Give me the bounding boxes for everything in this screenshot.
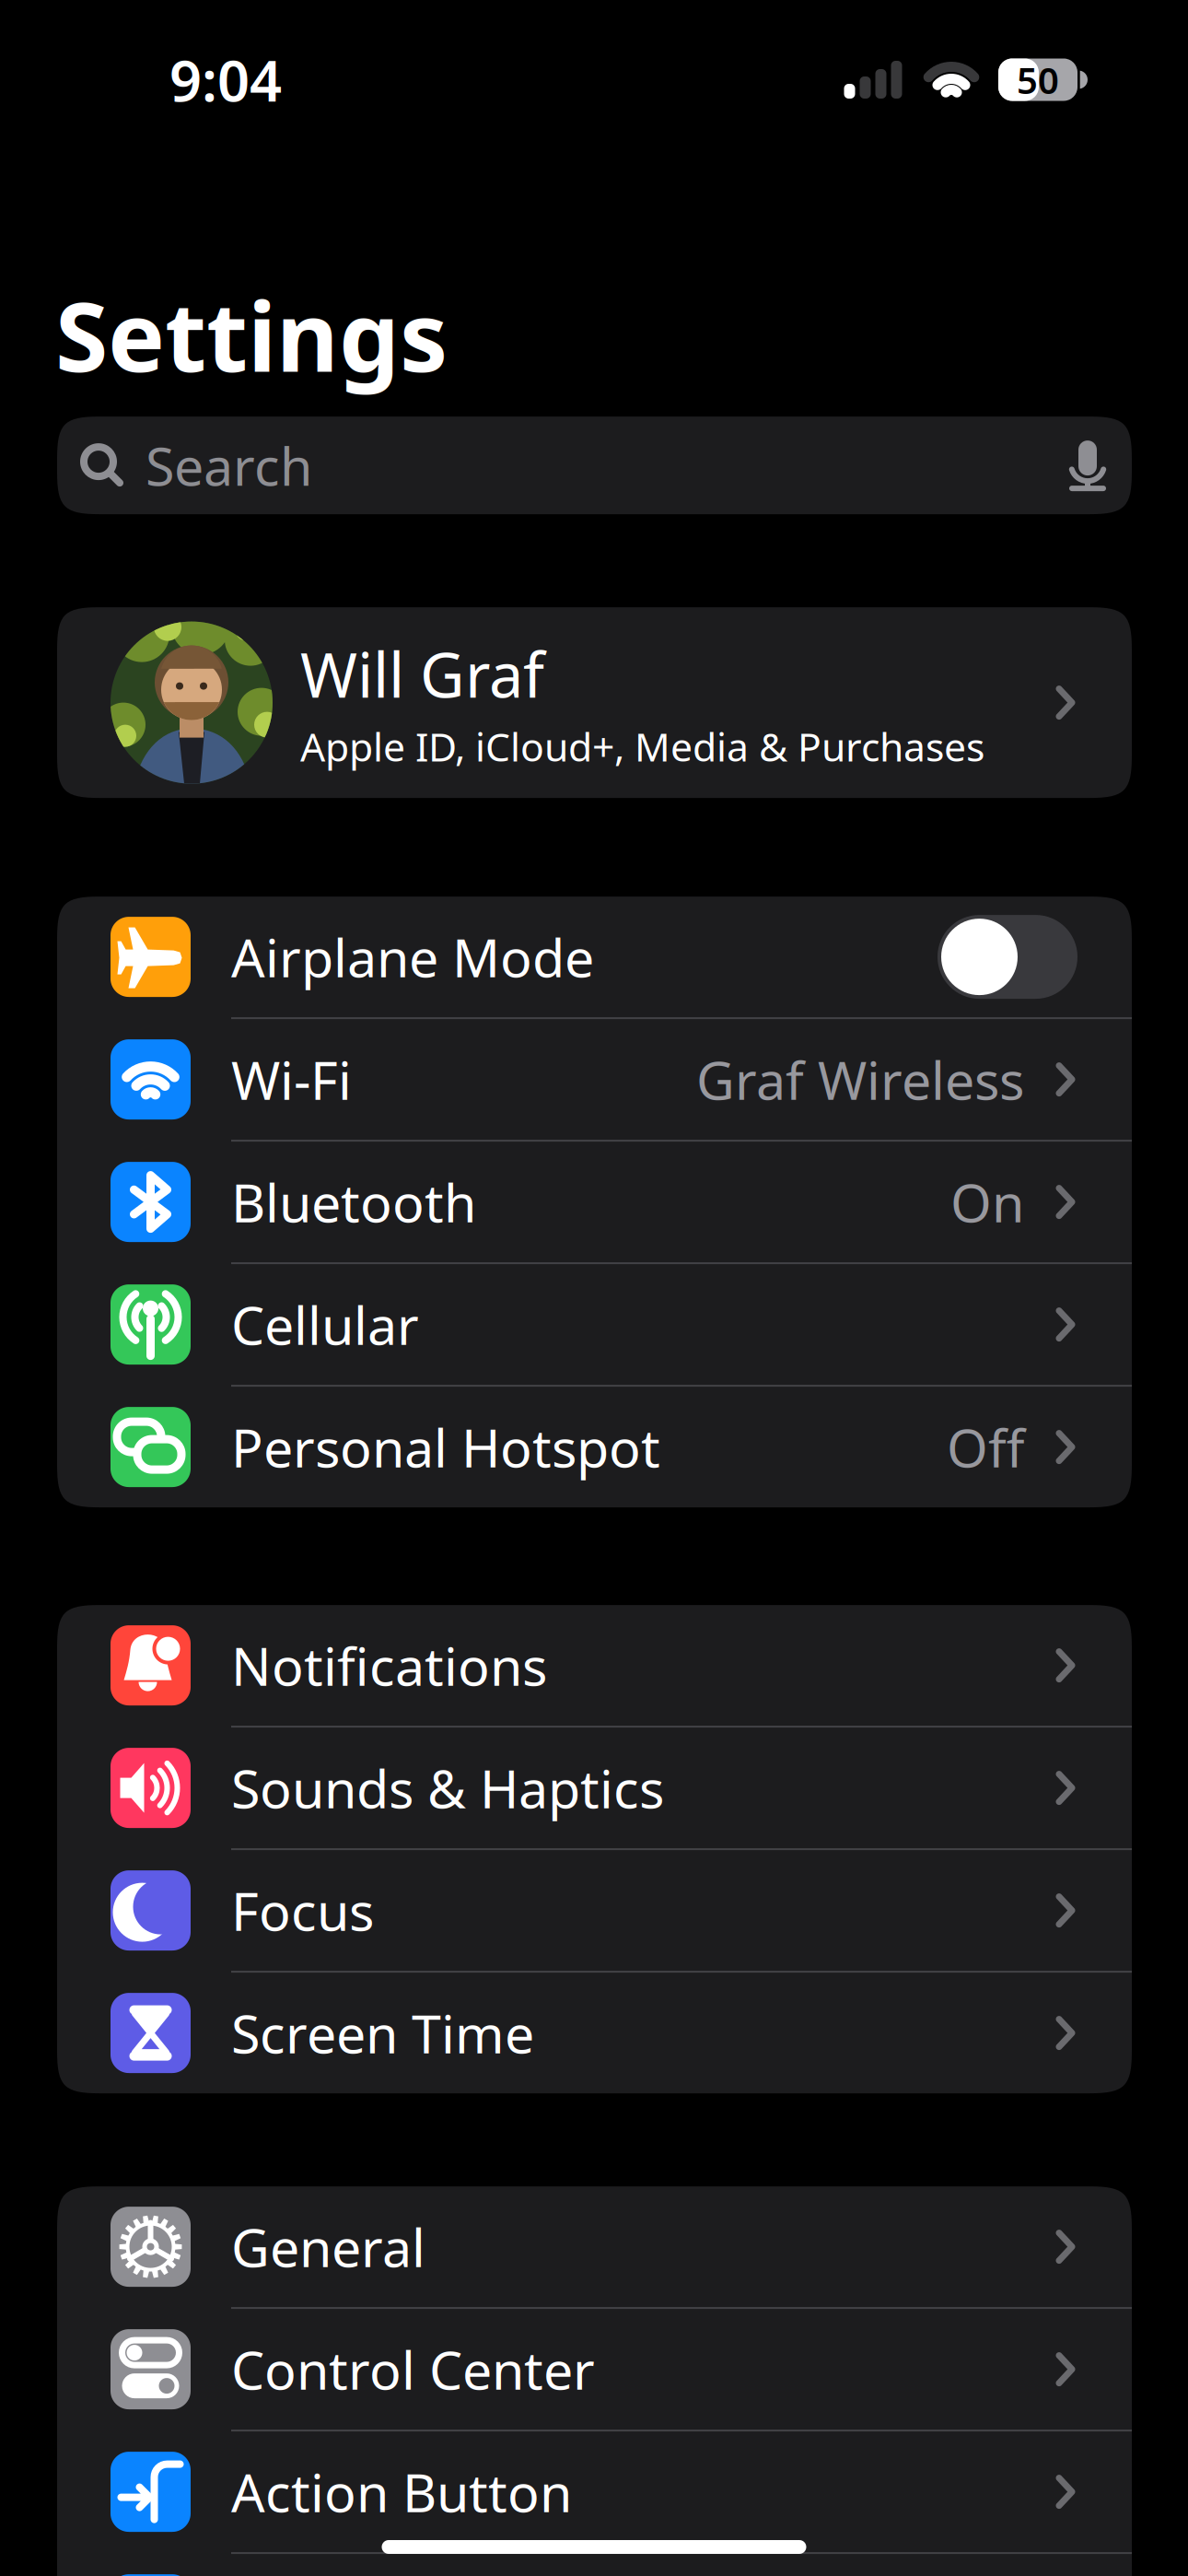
staticText: On	[950, 1167, 1024, 1237]
staticText: Off	[947, 1412, 1024, 1482]
staticText: General	[231, 2212, 425, 2282]
button[interactable]: Wi-Fi	[57, 1019, 1132, 1140]
staticText: Screen Time	[231, 1998, 534, 2068]
staticText: Will Graf	[300, 633, 544, 714]
button[interactable]: Will Graf	[57, 607, 1132, 798]
button[interactable]: Notifications	[57, 1605, 1132, 1726]
staticText: Notifications	[231, 1630, 547, 1700]
button[interactable]: Screen Time	[57, 1973, 1132, 2093]
button[interactable]: Bluetooth	[57, 1142, 1132, 1262]
button[interactable]: Personal Hotspot	[57, 1387, 1132, 1507]
button[interactable]: Airplane Mode toggle	[938, 915, 1077, 999]
staticText: Personal Hotspot	[231, 1412, 660, 1482]
staticText: Action Button	[231, 2457, 572, 2527]
staticText: Sounds & Haptics	[231, 1753, 664, 1823]
staticText: Airplane Mode	[231, 922, 594, 992]
button[interactable]: Control Center	[57, 2309, 1132, 2430]
button[interactable]: Action Button	[57, 2431, 1132, 2552]
button[interactable]: Search	[57, 417, 1132, 514]
button[interactable]: General	[57, 2186, 1132, 2307]
button[interactable]: Display & Brightness	[57, 2554, 1132, 2576]
staticText: Settings	[55, 271, 448, 398]
staticText: Focus	[231, 1875, 374, 1945]
staticText: 50	[1017, 55, 1059, 104]
button[interactable]: Sounds & Haptics	[57, 1728, 1132, 1848]
staticText: Graf Wireless	[696, 1044, 1024, 1114]
button[interactable]: Cellular	[57, 1264, 1132, 1385]
staticText: Bluetooth	[231, 1167, 476, 1237]
staticText: Apple ID, iCloud+, Media & Purchases	[300, 720, 984, 772]
staticText: Search	[146, 430, 312, 500]
staticText: Control Center	[231, 2334, 595, 2404]
staticText: Wi-Fi	[231, 1044, 352, 1114]
button[interactable]: Focus	[57, 1850, 1132, 1971]
staticText: 9:04	[169, 42, 282, 117]
staticText: Cellular	[231, 1289, 419, 1359]
